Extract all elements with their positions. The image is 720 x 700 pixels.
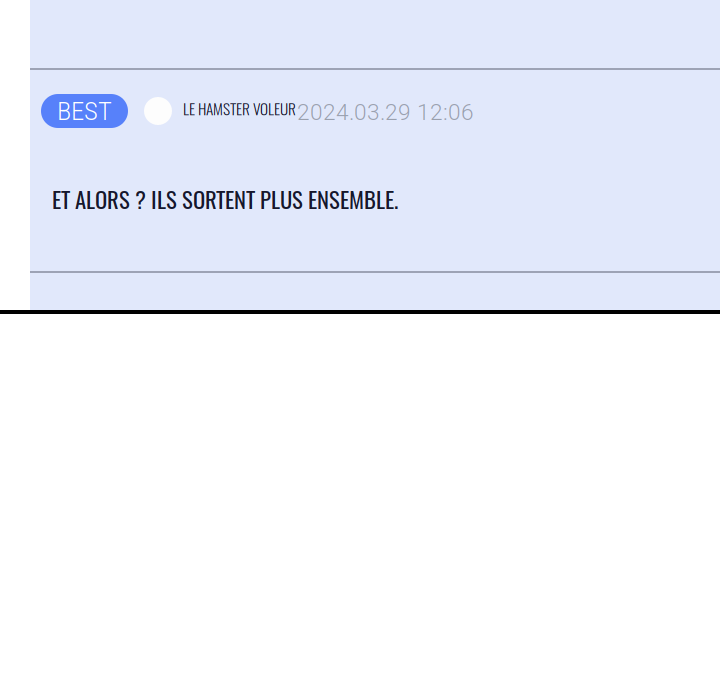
staticText: BEST xyxy=(57,95,112,127)
staticText: ET ALORS ? ILS SORTENT PLUS ENSEMBLE. xyxy=(52,182,398,216)
staticText: LE HAMSTER VOLEUR xyxy=(183,97,296,120)
button[interactable]: Profile photo xyxy=(144,97,172,125)
staticText: 2024.03.29 12:06 xyxy=(297,99,474,126)
button[interactable]: BEST xyxy=(30,70,720,271)
button[interactable]: BEST xyxy=(41,94,128,128)
